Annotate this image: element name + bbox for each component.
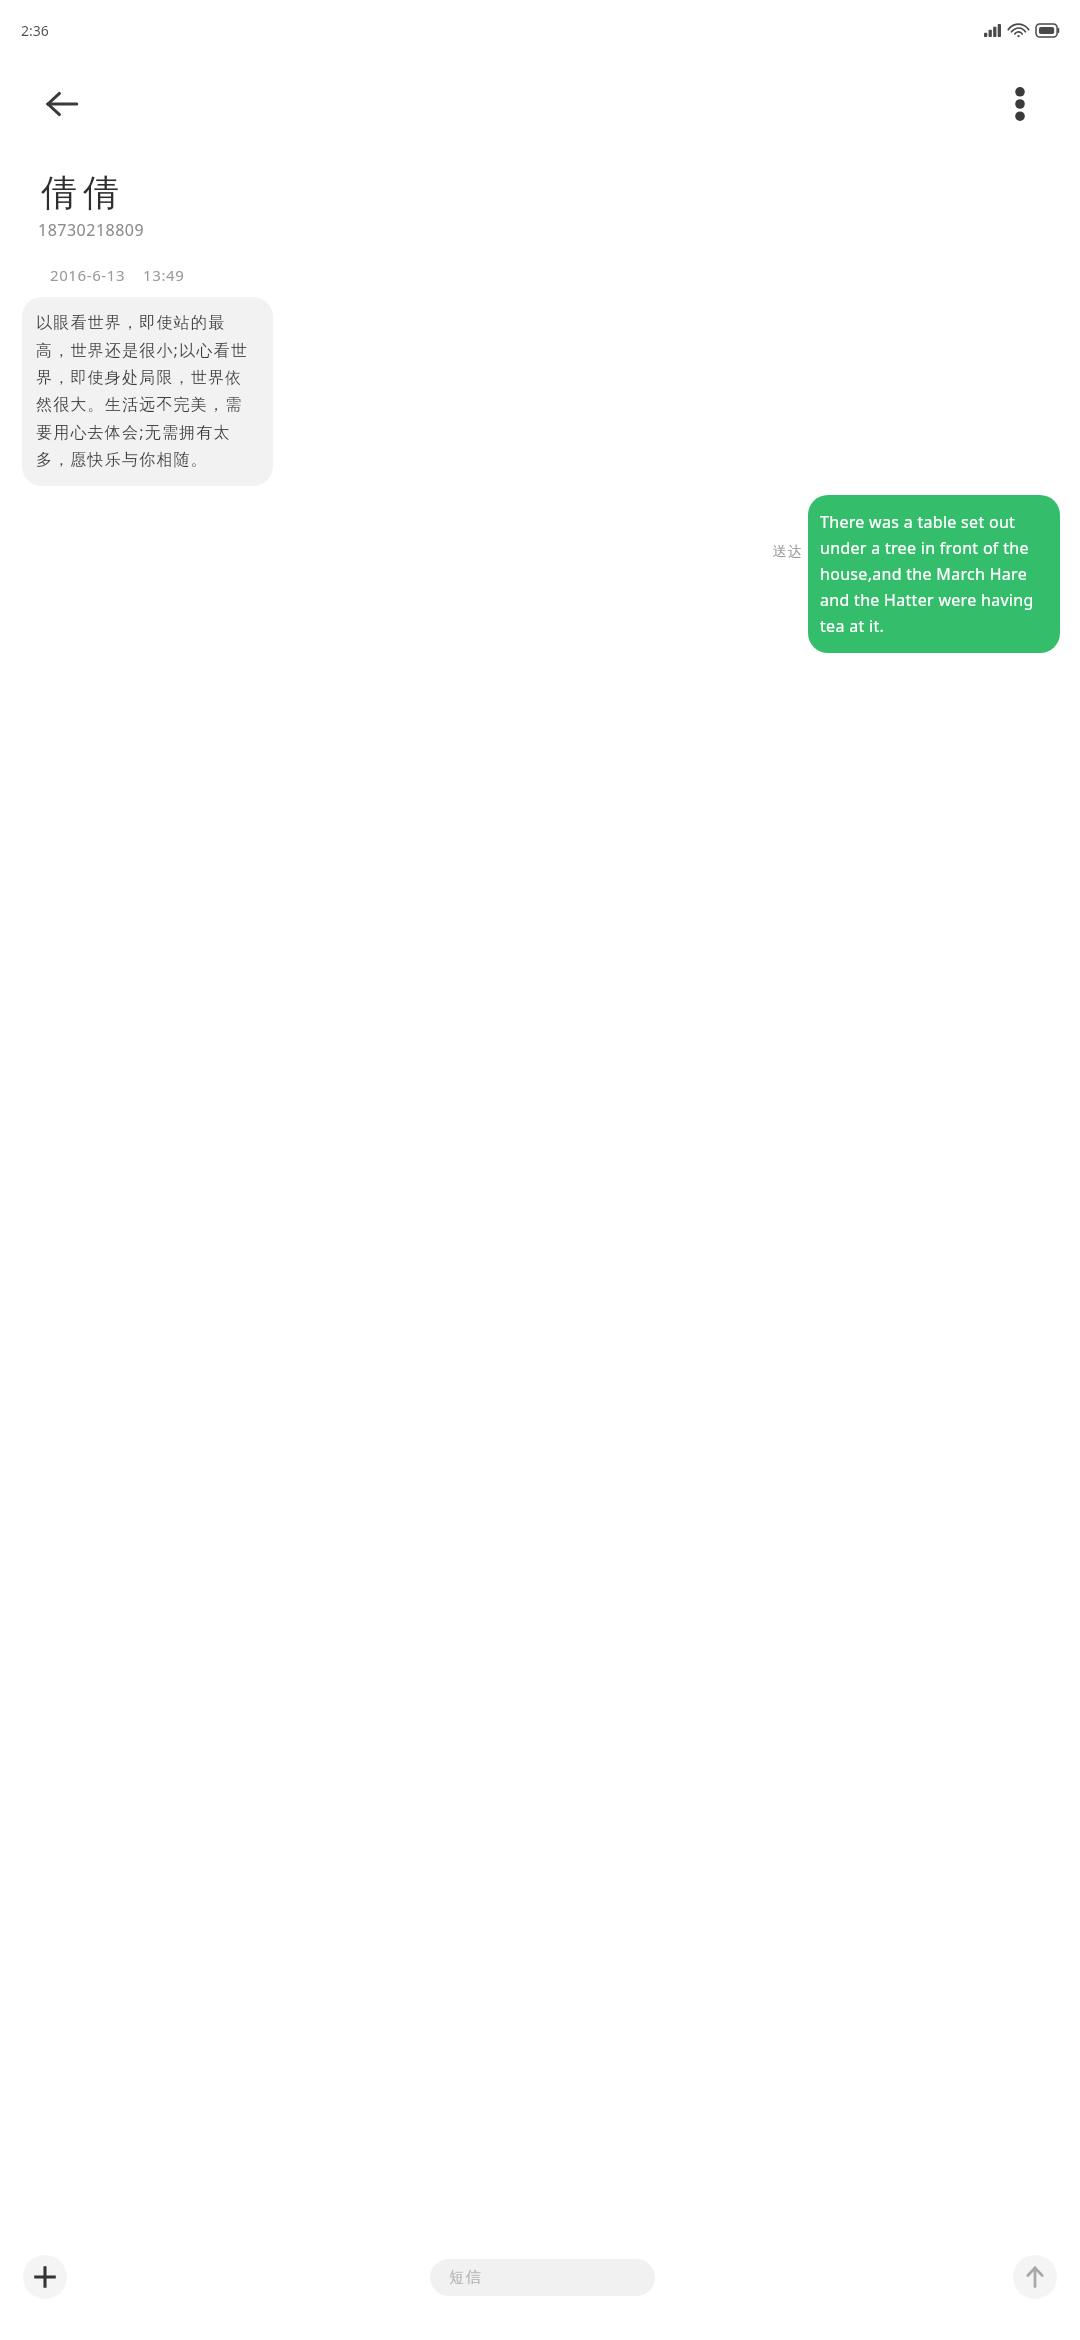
button[interactable]: Back [28, 70, 96, 138]
button[interactable]: 短信 [430, 2259, 655, 2296]
staticText: There was a table set out under a tree i… [820, 511, 1048, 637]
staticText: 送达 [772, 543, 802, 561]
staticText: 2016-6-13 13:49 [50, 265, 185, 285]
button[interactable]: There was a table set out under a tree i… [808, 495, 1060, 653]
button[interactable]: More options [988, 72, 1052, 136]
staticText: 18730218809 [38, 219, 145, 241]
staticText: 倩倩 [38, 170, 122, 215]
button[interactable]: Send [1013, 2255, 1057, 2299]
button[interactable]: Add attachment [23, 2255, 67, 2299]
staticText: 以眼看世界，即使站的最高，世界还是很小;以心看世界，即使身处局限，世界依然很大。… [36, 313, 259, 470]
staticText: 短信 [449, 2268, 481, 2287]
staticText: 2:36 [21, 21, 49, 40]
button[interactable]: 以眼看世界，即使站的最高，世界还是很小;以心看世界，即使身处局限，世界依然很大。… [22, 297, 273, 486]
